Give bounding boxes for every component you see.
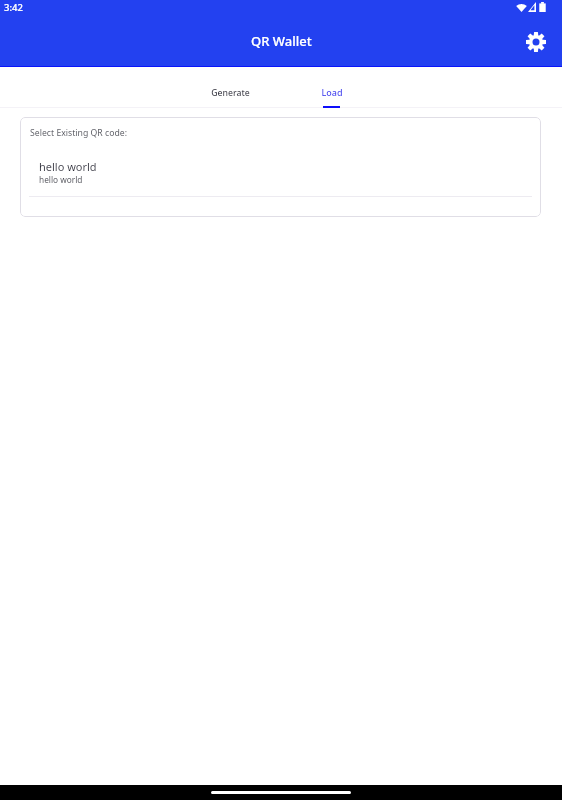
button[interactable]: Settings xyxy=(522,28,549,55)
staticText: 3:42 xyxy=(4,1,23,14)
button[interactable]: Load xyxy=(281,67,382,108)
staticText: hello world xyxy=(39,159,97,174)
staticText: QR Wallet xyxy=(251,32,312,50)
staticText: Load xyxy=(321,86,343,98)
button[interactable]: hello world xyxy=(20,159,541,191)
button[interactable]: Generate xyxy=(180,67,281,108)
staticText: Generate xyxy=(211,87,250,99)
staticText: Select Existing QR code: xyxy=(30,127,127,139)
staticText: hello world xyxy=(39,174,83,185)
